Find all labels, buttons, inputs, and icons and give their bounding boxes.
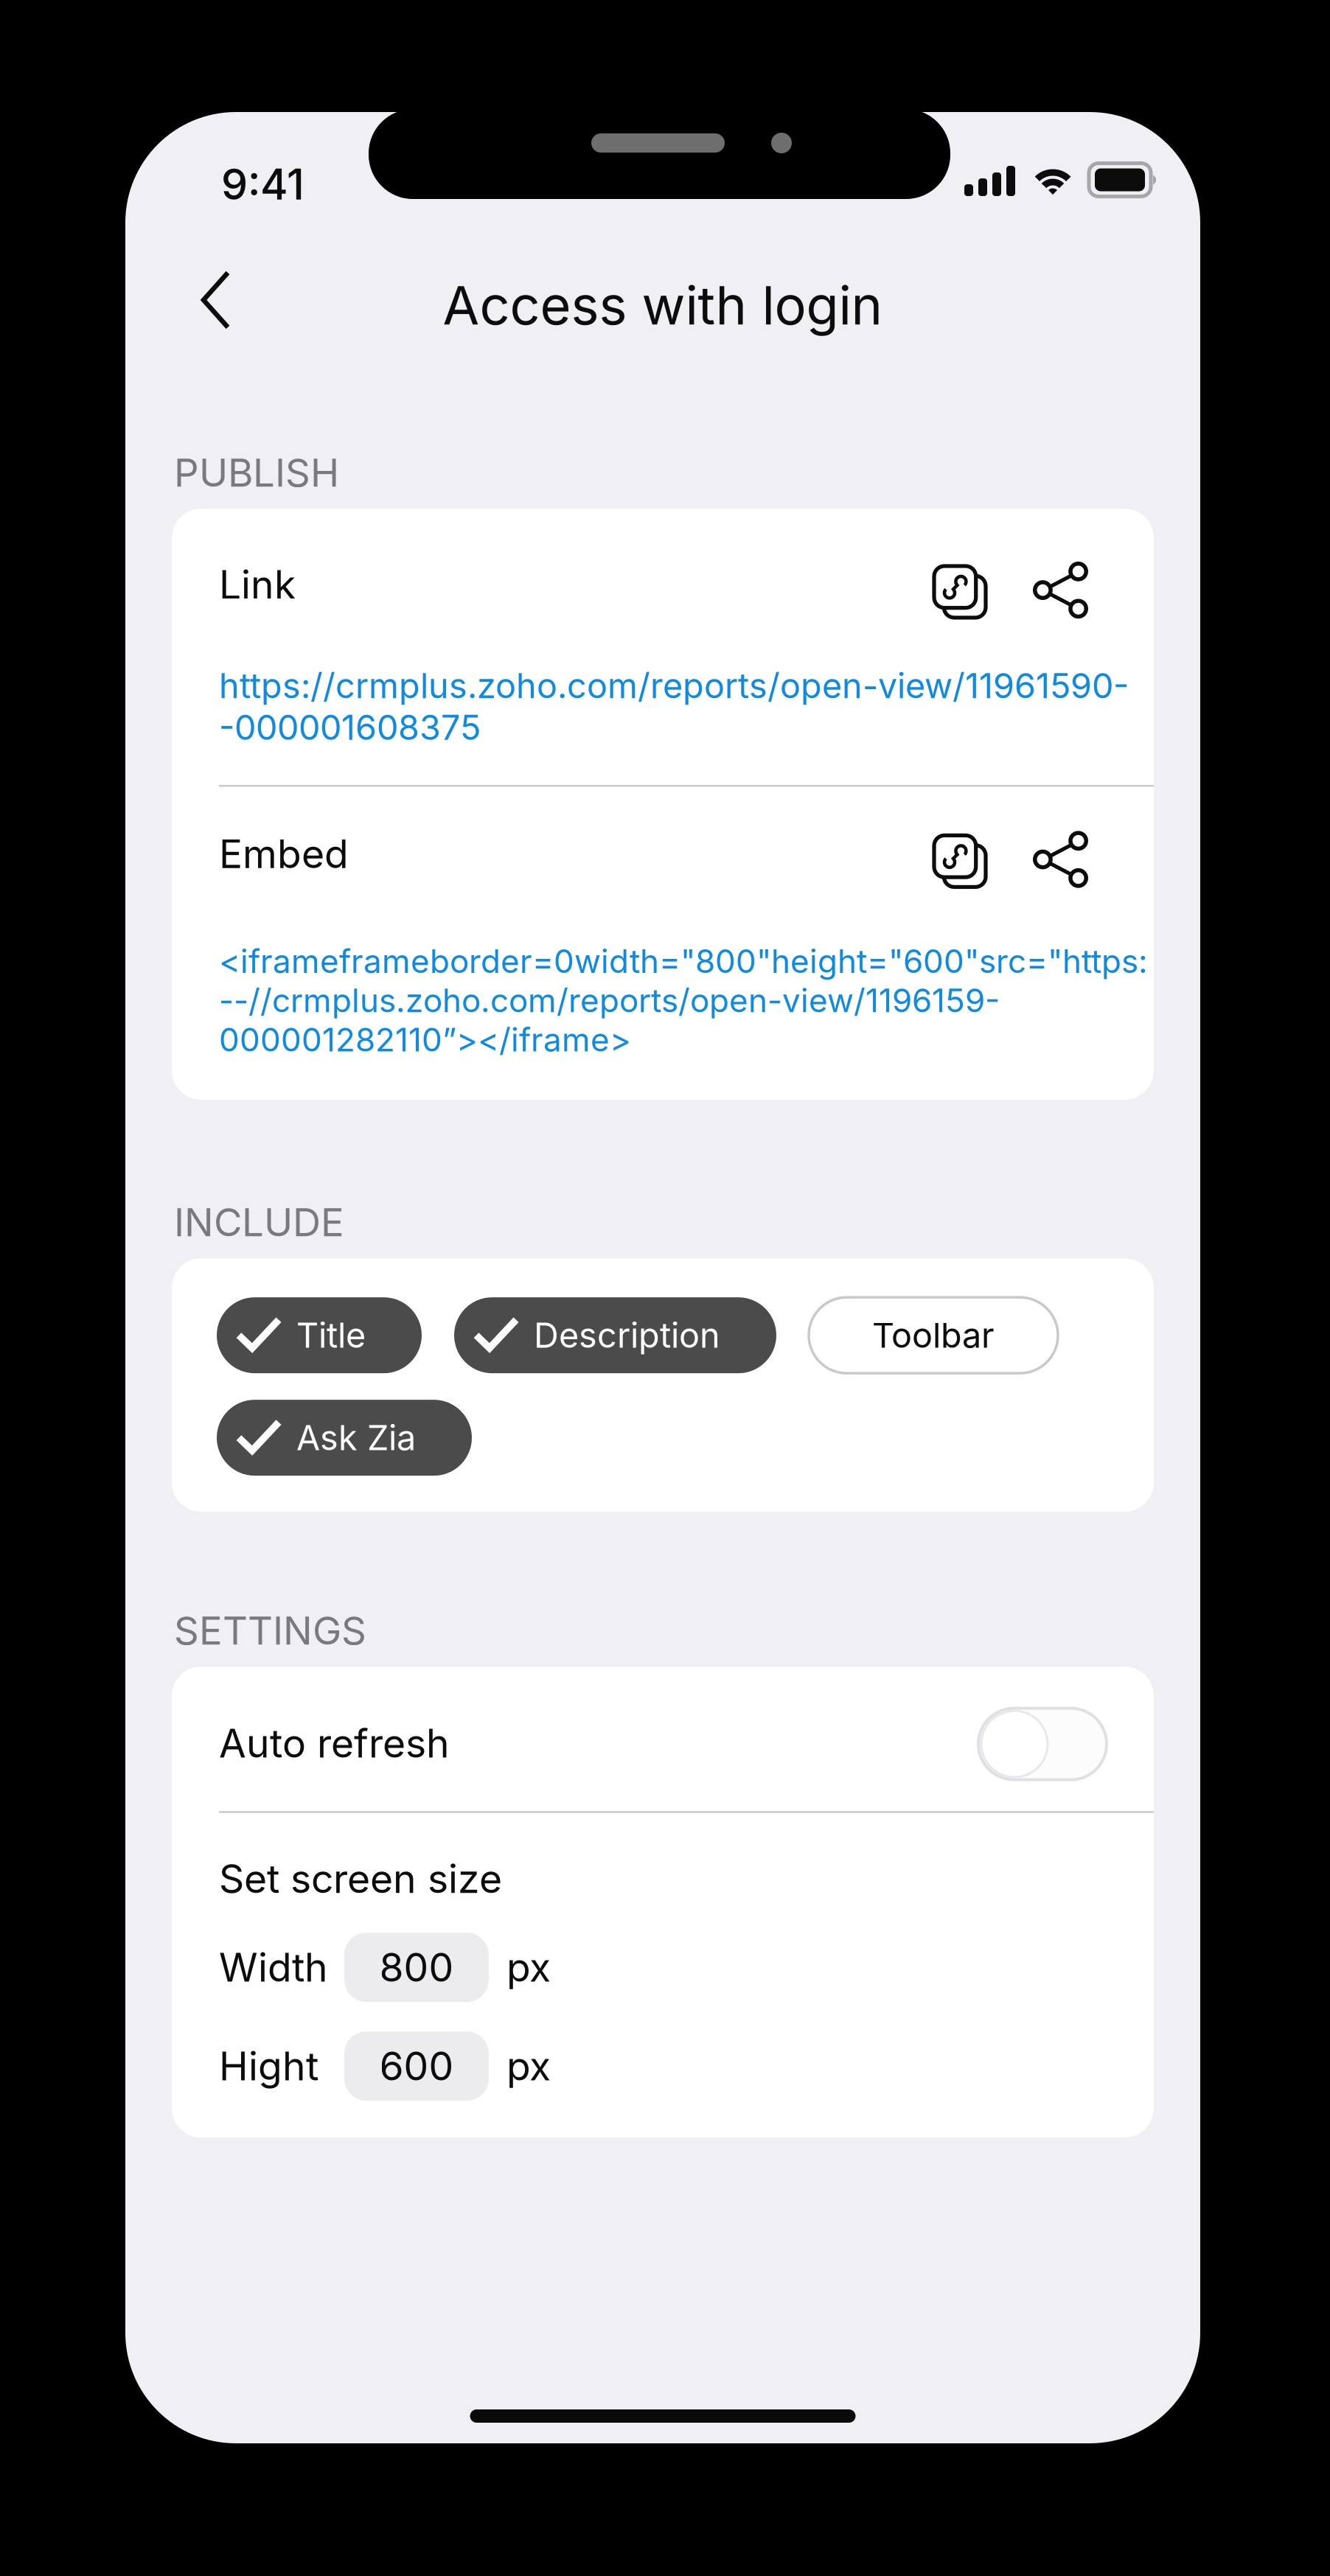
button[interactable]: Share Link: [989, 547, 1107, 622]
staticText: Title: [296, 1314, 366, 1356]
staticText: SETTINGS: [174, 1607, 366, 1654]
staticText: 9:41: [221, 159, 304, 210]
staticText: Ask Zia: [296, 1417, 416, 1459]
button[interactable]: Ask Zia: [217, 1400, 472, 1476]
button[interactable]: Back: [125, 240, 253, 374]
staticText: Auto refresh: [219, 1719, 450, 1767]
staticText: Description: [534, 1314, 720, 1356]
button[interactable]: Share Embed: [989, 816, 1107, 892]
staticText: px: [506, 1944, 551, 1991]
staticText: 800: [379, 1944, 454, 1991]
staticText: https://crmplus.zoho.com/reports/open-vi…: [219, 665, 1129, 748]
button[interactable]: Copy Link: [934, 550, 989, 619]
button[interactable]: Toolbar: [809, 1297, 1058, 1373]
button[interactable]: Copy Embed: [934, 819, 989, 888]
staticText: Access with login: [443, 273, 883, 337]
button[interactable]: Description: [454, 1297, 776, 1373]
staticText: Width: [219, 1944, 328, 1991]
button[interactable]: Title: [217, 1297, 422, 1373]
staticText: PUBLISH: [174, 449, 339, 496]
staticText: 600: [379, 2042, 454, 2090]
staticText: INCLUDE: [174, 1199, 344, 1246]
staticText: Set screen size: [219, 1855, 502, 1902]
staticText: Toolbar: [872, 1314, 995, 1356]
button[interactable]: Auto refresh: [978, 1703, 1107, 1775]
staticText: Hight: [219, 2042, 318, 2090]
staticText: Link: [219, 561, 296, 608]
button[interactable]: 600: [344, 2031, 489, 2101]
staticText: Embed: [219, 830, 349, 878]
button[interactable]: 800: [344, 1933, 489, 2002]
staticText: <iframeframeborder=0width="800"height="6…: [219, 942, 1148, 1059]
staticText: px: [506, 2042, 551, 2090]
